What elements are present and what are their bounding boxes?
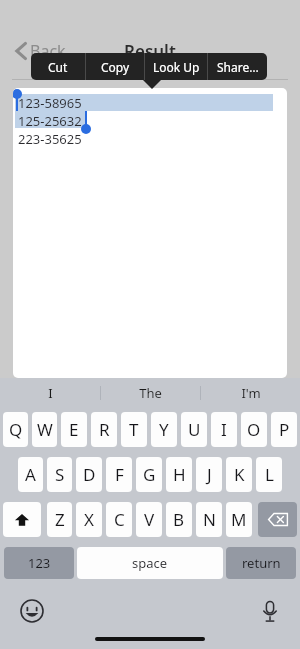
button[interactable]: N <box>196 502 222 537</box>
button[interactable]: U <box>181 412 207 447</box>
staticText: Result <box>124 40 176 63</box>
button[interactable]: J <box>196 457 222 492</box>
button[interactable]: Emoji keyboard <box>20 599 44 623</box>
staticText: 123 <box>28 554 51 572</box>
staticText: Share… <box>217 59 259 75</box>
button[interactable]: A <box>18 457 43 492</box>
button[interactable]: space <box>77 547 223 579</box>
button[interactable]: M <box>226 502 252 537</box>
staticText: I'm <box>241 384 261 402</box>
staticText: Y <box>159 418 169 441</box>
staticText: C <box>114 508 125 531</box>
button[interactable]: return <box>226 547 296 579</box>
button[interactable]: I <box>0 378 100 408</box>
staticText: U <box>188 418 201 441</box>
staticText: B <box>173 508 185 531</box>
staticText: 125-25632 <box>18 112 82 130</box>
staticText: P <box>279 418 290 441</box>
button[interactable]: Copy <box>86 53 144 80</box>
button[interactable]: W <box>32 412 57 447</box>
staticText: space <box>132 554 168 572</box>
staticText: D <box>83 463 96 486</box>
staticText: E <box>69 418 79 441</box>
staticText: R <box>99 418 110 441</box>
button[interactable]: Share… <box>208 53 267 80</box>
button[interactable]: R <box>91 412 117 447</box>
button[interactable]: Z <box>47 502 72 537</box>
staticText: 123-58965 <box>18 94 82 112</box>
button[interactable]: L <box>256 457 282 492</box>
staticText: A <box>25 463 36 486</box>
button[interactable]: O <box>241 412 267 447</box>
staticText: The <box>139 384 162 402</box>
button[interactable]: E <box>61 412 87 447</box>
button[interactable]: I <box>211 412 237 447</box>
button[interactable]: P <box>271 412 297 447</box>
button[interactable]: B <box>166 502 192 537</box>
button[interactable]: Cut <box>31 53 85 80</box>
staticText: Cut <box>48 59 68 75</box>
button[interactable]: Dictation <box>258 599 282 623</box>
button[interactable]: The <box>101 378 200 408</box>
staticText: V <box>144 508 155 531</box>
staticText: O <box>247 418 261 441</box>
staticText: Q <box>9 418 23 441</box>
staticText: L <box>265 463 274 486</box>
button[interactable]: G <box>136 457 162 492</box>
staticText: Back <box>30 40 66 62</box>
staticText: G <box>143 463 156 486</box>
staticText: H <box>173 463 186 486</box>
staticText: N <box>203 508 216 531</box>
staticText: return <box>242 554 281 572</box>
staticText: J <box>207 463 212 486</box>
staticText: I <box>48 384 53 402</box>
staticText: 223-35625 <box>18 130 82 148</box>
staticText: Look Up <box>153 59 200 75</box>
button[interactable]: F <box>106 457 132 492</box>
button[interactable]: Backspace <box>258 502 297 537</box>
button[interactable]: T <box>121 412 147 447</box>
button[interactable]: C <box>106 502 132 537</box>
button[interactable]: K <box>226 457 252 492</box>
staticText: K <box>234 463 245 486</box>
staticText: M <box>231 508 247 531</box>
button[interactable]: V <box>136 502 162 537</box>
button[interactable]: 123 <box>4 547 74 579</box>
button[interactable]: Y <box>151 412 177 447</box>
button[interactable]: Look Up <box>145 53 207 80</box>
button[interactable]: I'm <box>201 378 300 408</box>
button[interactable]: S <box>47 457 72 492</box>
button[interactable]: H <box>166 457 192 492</box>
button[interactable]: Q <box>3 412 28 447</box>
staticText: I <box>221 418 227 441</box>
button[interactable]: X <box>76 502 102 537</box>
staticText: S <box>55 463 65 486</box>
staticText: Z <box>55 508 65 531</box>
staticText: W <box>37 418 53 441</box>
button[interactable]: D <box>76 457 102 492</box>
staticText: F <box>115 463 124 486</box>
staticText: X <box>84 508 94 531</box>
button[interactable]: 123-58965 <box>13 88 287 378</box>
button[interactable]: Back <box>14 38 66 64</box>
staticText: Copy <box>101 59 130 75</box>
staticText: T <box>129 418 139 441</box>
button[interactable]: Shift <box>3 502 41 537</box>
